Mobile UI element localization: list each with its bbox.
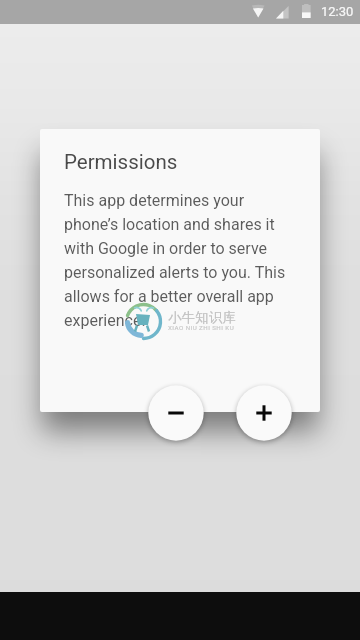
staticText: Permissions	[64, 150, 178, 174]
button[interactable]: Decrease	[141, 378, 211, 448]
other: Wi-Fi	[251, 4, 266, 19]
staticText: This app determines your phone’s locatio…	[64, 191, 297, 330]
other: Mobile signal	[276, 6, 289, 19]
staticText: 小牛知识库	[168, 309, 237, 326]
staticText: XIAO NIU ZHI SHI KU	[168, 324, 235, 331]
other: Battery	[302, 4, 312, 20]
staticText: 12:30	[321, 4, 354, 19]
button[interactable]: Increase	[229, 378, 299, 448]
